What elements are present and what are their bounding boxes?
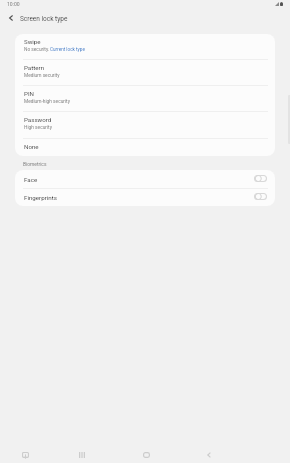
staticText: Password (24, 116, 52, 123)
button[interactable]: Back (196, 435, 222, 463)
button[interactable]: Face (15, 170, 275, 188)
button[interactable]: Navigate up (1, 8, 20, 27)
staticText: Current lock type (50, 47, 85, 52)
staticText: Swipe (24, 38, 41, 45)
staticText: 10:00 (7, 1, 20, 7)
staticText: No security. (24, 47, 50, 53)
button[interactable]: PIN (15, 85, 275, 111)
staticText: Fingerprints (24, 194, 57, 201)
button[interactable]: Recent apps (69, 435, 95, 463)
staticText: Medium-high security (24, 99, 70, 105)
staticText: PIN (24, 90, 35, 97)
staticText: None (24, 143, 39, 150)
staticText: Pattern (24, 64, 45, 71)
button[interactable]: Pattern (15, 59, 275, 85)
button[interactable]: Home (133, 435, 159, 463)
button[interactable]: Hide keyboard (12, 435, 38, 463)
button[interactable]: None (15, 138, 275, 156)
staticText: Medium security (24, 73, 60, 79)
staticText: High security (24, 125, 52, 131)
staticText: Biometrics (23, 161, 47, 167)
staticText: Screen lock type (20, 15, 68, 23)
button[interactable]: Password (15, 111, 275, 137)
button[interactable]: Swipe (15, 34, 275, 59)
button[interactable]: Fingerprints (15, 188, 275, 206)
staticText: Face (24, 176, 38, 183)
